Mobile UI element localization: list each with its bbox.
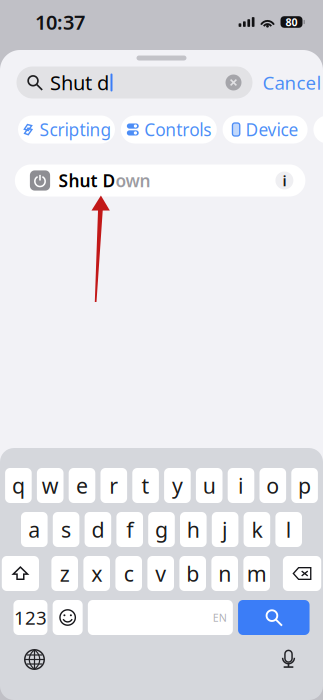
button[interactable]: Shut D bbox=[15, 164, 305, 196]
button[interactable]: v bbox=[147, 556, 174, 591]
staticText: Shut d bbox=[50, 69, 109, 96]
button[interactable]: h bbox=[180, 512, 207, 547]
staticText: k bbox=[251, 515, 262, 544]
staticText: i bbox=[238, 471, 244, 500]
staticText: 10:37 bbox=[35, 9, 85, 35]
staticText: y bbox=[172, 471, 183, 500]
button[interactable]: x bbox=[83, 556, 110, 591]
button[interactable]: 123 bbox=[13, 600, 47, 635]
button[interactable]: w bbox=[37, 468, 63, 503]
button[interactable]: k bbox=[244, 512, 270, 547]
staticText: n bbox=[218, 559, 231, 588]
button[interactable]: Delete bbox=[283, 556, 321, 591]
button[interactable]: q bbox=[5, 468, 32, 503]
staticText: p bbox=[298, 471, 311, 500]
button[interactable]: Dictation bbox=[278, 649, 299, 670]
button[interactable]: i bbox=[228, 468, 254, 503]
staticText: c bbox=[124, 559, 134, 588]
staticText: m bbox=[247, 559, 267, 588]
button[interactable]: e bbox=[69, 468, 95, 503]
staticText: v bbox=[155, 559, 166, 588]
button[interactable]: Controls bbox=[121, 115, 217, 143]
button[interactable]: n bbox=[211, 556, 238, 591]
staticText: u bbox=[203, 471, 216, 500]
staticText: i bbox=[282, 171, 286, 190]
staticText: a bbox=[28, 515, 40, 544]
button[interactable]: z bbox=[51, 556, 78, 591]
button[interactable]: t bbox=[132, 468, 159, 503]
button[interactable]: Space bbox=[88, 600, 233, 635]
button[interactable]: Scripting bbox=[18, 115, 115, 143]
staticText: Device bbox=[245, 118, 298, 141]
button[interactable]: Change keyboard bbox=[24, 649, 45, 670]
staticText: 123 bbox=[14, 605, 47, 630]
staticText: e bbox=[76, 471, 88, 500]
button[interactable]: Cancel bbox=[261, 66, 323, 98]
staticText: 80 bbox=[285, 15, 297, 29]
staticText: t bbox=[142, 471, 150, 500]
button[interactable]: c bbox=[115, 556, 142, 591]
button[interactable]: Shift bbox=[2, 556, 39, 591]
staticText: z bbox=[60, 559, 70, 588]
staticText: Shut D bbox=[58, 169, 115, 192]
staticText: Cancel bbox=[262, 70, 321, 95]
button[interactable]: r bbox=[100, 468, 127, 503]
button[interactable]: j bbox=[212, 512, 238, 547]
staticText: Scripting bbox=[39, 118, 111, 141]
staticText: j bbox=[222, 515, 228, 544]
staticText: x bbox=[91, 559, 102, 588]
staticText: o bbox=[266, 471, 279, 500]
staticText: EN bbox=[213, 610, 227, 625]
button[interactable]: s bbox=[53, 512, 79, 547]
staticText: own bbox=[115, 169, 150, 192]
staticText: h bbox=[187, 515, 200, 544]
button[interactable]: Device bbox=[223, 115, 308, 143]
staticText: r bbox=[109, 471, 118, 500]
staticText: l bbox=[286, 515, 292, 544]
button[interactable]: d bbox=[85, 512, 111, 547]
staticText: f bbox=[126, 515, 133, 544]
button[interactable]: p bbox=[291, 468, 318, 503]
button[interactable]: Apps bbox=[313, 115, 323, 143]
button[interactable]: g bbox=[148, 512, 175, 547]
staticText: d bbox=[91, 515, 104, 544]
button[interactable]: b bbox=[179, 556, 206, 591]
button[interactable]: a bbox=[21, 512, 48, 547]
button[interactable]: Search bbox=[238, 600, 309, 635]
button[interactable]: y bbox=[164, 468, 191, 503]
button[interactable]: o bbox=[259, 468, 286, 503]
staticText: s bbox=[61, 515, 71, 544]
staticText: w bbox=[42, 471, 59, 500]
button[interactable]: l bbox=[275, 512, 302, 547]
button[interactable]: Emoji bbox=[53, 600, 83, 635]
staticText: Controls bbox=[144, 118, 211, 141]
button[interactable]: m bbox=[243, 556, 270, 591]
button[interactable]: u bbox=[196, 468, 222, 503]
button[interactable]: f bbox=[116, 512, 143, 547]
staticText: g bbox=[155, 515, 168, 544]
staticText: b bbox=[186, 559, 199, 588]
staticText: q bbox=[12, 471, 25, 500]
